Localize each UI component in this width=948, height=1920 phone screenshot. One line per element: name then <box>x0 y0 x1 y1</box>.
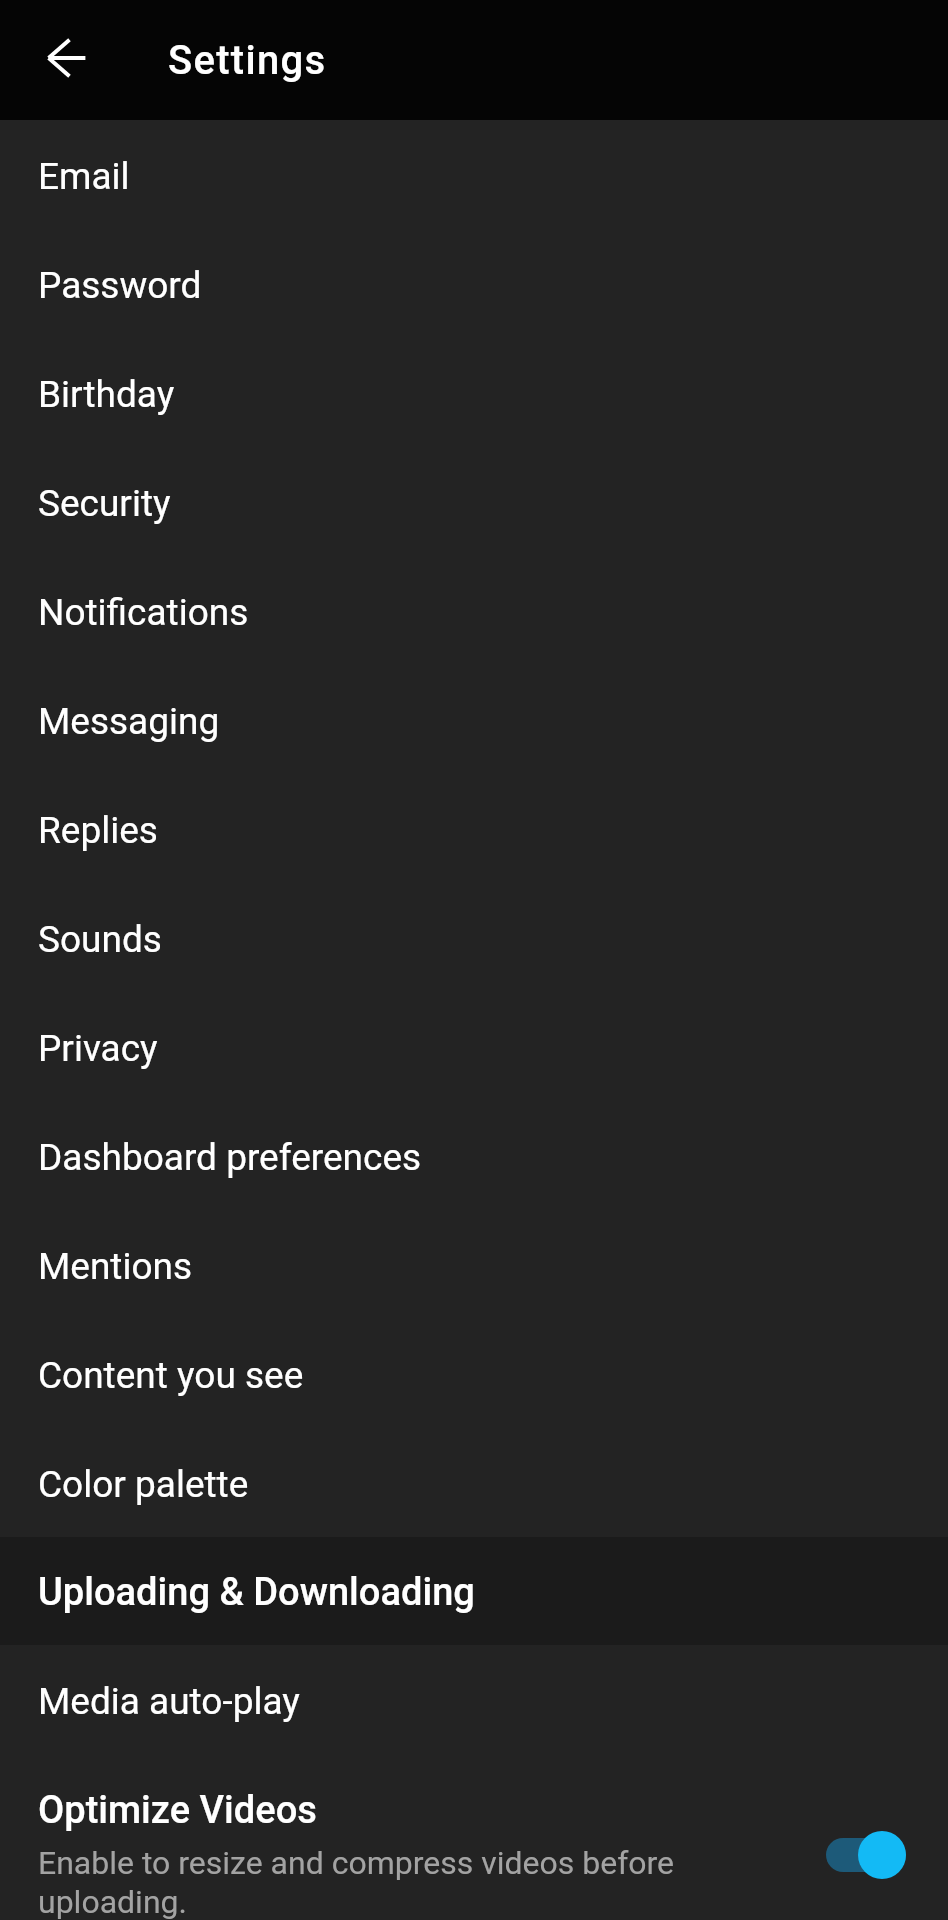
staticText: Media auto-play <box>38 1680 300 1723</box>
button[interactable]: Media auto-play <box>0 1645 948 1754</box>
staticText: Settings <box>168 37 327 84</box>
button[interactable]: Privacy <box>0 992 948 1101</box>
staticText: Enable to resize and compress videos bef… <box>38 1844 686 1920</box>
staticText: Security <box>38 482 171 525</box>
button[interactable]: Password <box>0 229 948 338</box>
button[interactable]: Sounds <box>0 883 948 992</box>
staticText: Replies <box>38 809 158 852</box>
staticText: Notifications <box>38 591 249 634</box>
button[interactable]: Messaging <box>0 665 948 774</box>
staticText: Sounds <box>38 918 162 961</box>
staticText: Optimize Videos <box>38 1788 317 1833</box>
button[interactable]: Back <box>0 0 116 120</box>
button[interactable]: Mentions <box>0 1210 948 1319</box>
staticText: Email <box>38 155 130 198</box>
staticText: Dashboard preferences <box>38 1136 422 1179</box>
staticText: Password <box>38 264 202 307</box>
staticText: Uploading & Downloading <box>38 1570 475 1615</box>
button[interactable]: Replies <box>0 774 948 883</box>
button[interactable]: Notifications <box>0 556 948 665</box>
button[interactable]: Birthday <box>0 338 948 447</box>
button[interactable]: Optimize Videos, on <box>826 1831 906 1879</box>
staticText: Privacy <box>38 1027 158 1070</box>
staticText: Mentions <box>38 1245 193 1288</box>
staticText: Content you see <box>38 1354 304 1397</box>
button[interactable]: Optimize Videos <box>0 1754 948 1920</box>
staticText: Birthday <box>38 373 175 416</box>
button[interactable]: Dashboard preferences <box>0 1101 948 1210</box>
button[interactable]: Content you see <box>0 1319 948 1428</box>
staticText: Color palette <box>38 1463 249 1506</box>
button[interactable]: Color palette <box>0 1428 948 1537</box>
button[interactable]: Security <box>0 447 948 556</box>
button[interactable]: Email <box>0 120 948 229</box>
staticText: Messaging <box>38 700 220 743</box>
